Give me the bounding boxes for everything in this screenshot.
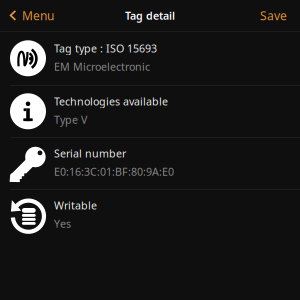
button[interactable]: Serial number	[0, 138, 300, 190]
button[interactable]: Save	[247, 0, 300, 31]
button[interactable]: Writable	[0, 190, 300, 242]
staticText: Technologies available	[54, 94, 168, 108]
staticText: Serial number	[54, 146, 126, 160]
button[interactable]: Technologies available	[0, 86, 300, 138]
staticText: Tag type : ISO 15693	[54, 41, 157, 55]
staticText: Type V	[54, 113, 87, 127]
button[interactable]: Menu	[0, 0, 62, 31]
button[interactable]: Tag type : ISO 15693	[0, 32, 300, 86]
staticText: Yes	[54, 217, 71, 231]
staticText: E0:16:3C:01:BF:80:9A:E0	[54, 165, 174, 179]
staticText: EM Microelectronic	[54, 60, 150, 74]
staticText: Save	[260, 7, 287, 23]
staticText: Menu	[22, 7, 54, 23]
staticText: Tag detail	[125, 8, 175, 23]
staticText: Writable	[54, 198, 97, 212]
